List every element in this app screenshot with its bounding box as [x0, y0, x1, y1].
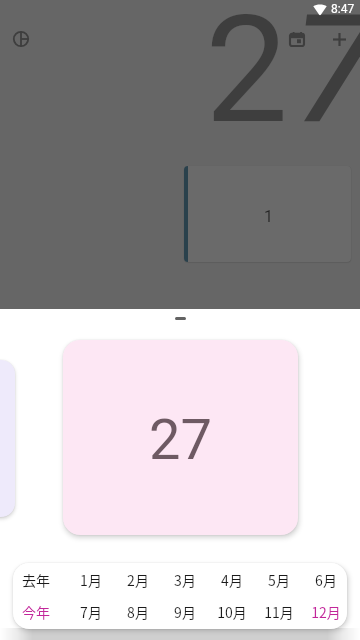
button[interactable]: 12月: [303, 600, 347, 624]
staticText: 9月: [174, 602, 196, 622]
button[interactable]: Switch calendar view: [5, 23, 37, 55]
button[interactable]: 今年: [13, 600, 59, 624]
staticText: 2: [205, 0, 289, 157]
button[interactable]: 9月: [162, 600, 208, 624]
staticText: 2月: [127, 570, 149, 590]
staticText: 11月: [264, 602, 294, 622]
button[interactable]: 3月: [162, 568, 208, 592]
button[interactable]: 10月: [209, 600, 255, 624]
button[interactable]: 7月: [68, 600, 114, 624]
button[interactable]: 11月: [256, 600, 302, 624]
button[interactable]: 1月: [68, 568, 114, 592]
staticText: 去年: [22, 570, 50, 590]
button[interactable]: 6月: [303, 568, 347, 592]
staticText: 3月: [174, 570, 196, 590]
staticText: 今年: [22, 602, 50, 622]
button[interactable]: 1: [184, 166, 351, 262]
staticText: 10月: [217, 602, 247, 622]
staticText: 6月: [315, 570, 337, 590]
staticText: 7月: [80, 602, 102, 622]
button[interactable]: Drag handle: [175, 317, 186, 320]
button[interactable]: 8月: [115, 600, 161, 624]
button[interactable]: Jump to today: [281, 23, 313, 55]
staticText: 27: [149, 407, 212, 473]
staticText: 12月: [311, 602, 341, 622]
button[interactable]: 5月: [256, 568, 302, 592]
button[interactable]: Add event: [323, 23, 355, 55]
staticText: 8月: [127, 602, 149, 622]
button[interactable]: 4月: [209, 568, 255, 592]
staticText: 5月: [268, 570, 290, 590]
staticText: 4月: [221, 570, 243, 590]
staticText: 1: [264, 207, 273, 226]
staticText: 8:47: [331, 2, 355, 16]
staticText: 1月: [80, 570, 102, 590]
button[interactable]: 27: [63, 340, 298, 535]
button[interactable]: 2月: [115, 568, 161, 592]
button[interactable]: 去年: [13, 568, 59, 592]
